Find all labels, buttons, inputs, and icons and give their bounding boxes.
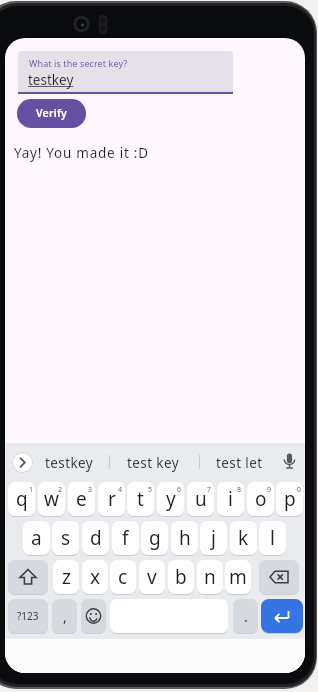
button[interactable]: i bbox=[217, 482, 244, 516]
button[interactable]: h bbox=[171, 521, 198, 555]
staticText: Yay! You made it :D bbox=[14, 144, 149, 162]
staticText: . bbox=[244, 607, 248, 626]
button[interactable]: ?123 bbox=[8, 599, 48, 633]
button[interactable]: , bbox=[52, 599, 77, 633]
button[interactable]: g bbox=[141, 521, 168, 555]
staticText: 0 bbox=[297, 485, 302, 495]
button[interactable]: a bbox=[23, 521, 50, 555]
staticText: 5 bbox=[148, 485, 153, 495]
button[interactable]: x bbox=[82, 560, 108, 594]
staticText: n bbox=[204, 564, 216, 590]
button[interactable]: o bbox=[247, 482, 274, 516]
staticText: l bbox=[270, 525, 275, 551]
button[interactable]: e bbox=[68, 482, 95, 516]
staticText: k bbox=[238, 525, 249, 551]
staticText: 3 bbox=[88, 485, 93, 495]
button[interactable]: What is the secret key? bbox=[18, 51, 233, 94]
button[interactable]: r bbox=[98, 482, 125, 516]
button[interactable] bbox=[261, 599, 303, 633]
button[interactable]: d bbox=[82, 521, 109, 555]
button[interactable]: m bbox=[225, 560, 251, 594]
staticText: 8 bbox=[237, 485, 242, 495]
staticText: o bbox=[255, 486, 267, 512]
staticText: , bbox=[63, 607, 67, 626]
button[interactable]: p bbox=[276, 482, 303, 516]
staticText: testkey bbox=[28, 71, 74, 89]
staticText: test let bbox=[216, 454, 263, 472]
staticText: q bbox=[16, 486, 28, 512]
staticText: Verify bbox=[36, 106, 67, 120]
button[interactable] bbox=[259, 560, 299, 594]
button[interactable]: l bbox=[259, 521, 286, 555]
button[interactable]: Verify bbox=[17, 99, 86, 128]
button[interactable]: v bbox=[139, 560, 165, 594]
staticText: e bbox=[76, 486, 87, 512]
button[interactable] bbox=[12, 452, 33, 473]
staticText: s bbox=[61, 525, 71, 551]
staticText: m bbox=[229, 564, 247, 590]
staticText: test key bbox=[127, 454, 179, 472]
staticText: h bbox=[179, 525, 191, 551]
button[interactable]: y bbox=[157, 482, 184, 516]
staticText: x bbox=[90, 564, 101, 590]
staticText: 9 bbox=[267, 485, 272, 495]
staticText: i bbox=[228, 486, 233, 512]
button[interactable]: b bbox=[168, 560, 194, 594]
staticText: 4 bbox=[118, 485, 123, 495]
staticText: ?123 bbox=[17, 609, 39, 623]
button[interactable]: k bbox=[230, 521, 257, 555]
staticText: g bbox=[149, 525, 161, 551]
button[interactable]: testkey bbox=[39, 452, 99, 473]
staticText: 7 bbox=[207, 485, 212, 495]
button[interactable]: c bbox=[110, 560, 136, 594]
button[interactable]: test let bbox=[209, 452, 269, 473]
staticText: t bbox=[137, 486, 144, 512]
staticText: c bbox=[118, 564, 128, 590]
staticText: f bbox=[122, 525, 129, 551]
button[interactable]: test key bbox=[123, 452, 183, 473]
staticText: j bbox=[211, 525, 216, 551]
button[interactable]: n bbox=[197, 560, 223, 594]
button[interactable] bbox=[8, 560, 48, 594]
button[interactable]: . bbox=[233, 599, 258, 633]
staticText: w bbox=[44, 486, 59, 512]
staticText: testkey bbox=[45, 454, 94, 472]
staticText: 2 bbox=[58, 485, 63, 495]
button[interactable] bbox=[81, 599, 106, 633]
staticText: z bbox=[62, 564, 71, 590]
staticText: 6 bbox=[177, 485, 182, 495]
button[interactable]: t bbox=[127, 482, 154, 516]
staticText: What is the secret key? bbox=[29, 57, 128, 69]
button[interactable]: f bbox=[112, 521, 139, 555]
staticText: y bbox=[166, 486, 176, 512]
button[interactable]: w bbox=[38, 482, 65, 516]
staticText: d bbox=[90, 525, 102, 551]
button[interactable]: s bbox=[52, 521, 79, 555]
staticText: v bbox=[147, 564, 157, 590]
staticText: 1 bbox=[29, 485, 34, 495]
staticText: u bbox=[195, 486, 207, 512]
staticText: a bbox=[31, 525, 42, 551]
button[interactable]: z bbox=[53, 560, 79, 594]
button[interactable]: u bbox=[187, 482, 214, 516]
button[interactable]: j bbox=[200, 521, 227, 555]
button[interactable]: q bbox=[8, 482, 35, 516]
staticText: b bbox=[175, 564, 187, 590]
staticText: p bbox=[284, 486, 296, 512]
staticText: r bbox=[108, 486, 116, 512]
